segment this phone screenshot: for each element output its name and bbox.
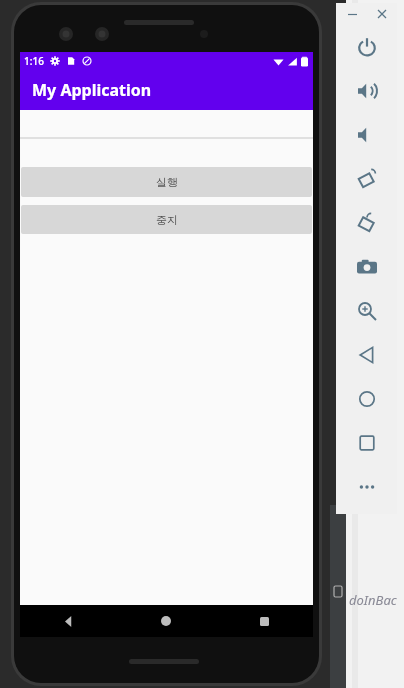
button[interactable]: Back <box>336 333 397 377</box>
button[interactable]: 실행 <box>21 167 312 197</box>
button[interactable]: Volume up <box>336 69 397 113</box>
button[interactable]: Rotate left <box>336 157 397 201</box>
button[interactable]: 중지 <box>21 205 312 234</box>
button[interactable]: Minimize <box>343 5 361 23</box>
button[interactable]: Volume down <box>336 113 397 157</box>
staticText: doInBac <box>349 591 397 609</box>
button[interactable]: Rotate right <box>336 201 397 245</box>
staticText: Device File Explo <box>284 606 320 630</box>
button[interactable]: Home <box>117 605 215 637</box>
staticText: 실행 <box>156 175 178 189</box>
staticText: 중지 <box>156 213 178 227</box>
button[interactable]: Overview <box>336 421 397 465</box>
staticText: My Application <box>32 79 152 101</box>
staticText: 1:16 <box>24 54 44 68</box>
button[interactable]: Power <box>336 25 397 69</box>
button[interactable]: Close <box>373 5 391 23</box>
button[interactable]: Back <box>20 605 117 637</box>
button[interactable]: Recent apps <box>215 605 313 637</box>
button[interactable]: Zoom <box>336 289 397 333</box>
button[interactable]: Home <box>336 377 397 421</box>
button[interactable]: More <box>336 465 397 509</box>
button[interactable]: Take screenshot <box>336 245 397 289</box>
